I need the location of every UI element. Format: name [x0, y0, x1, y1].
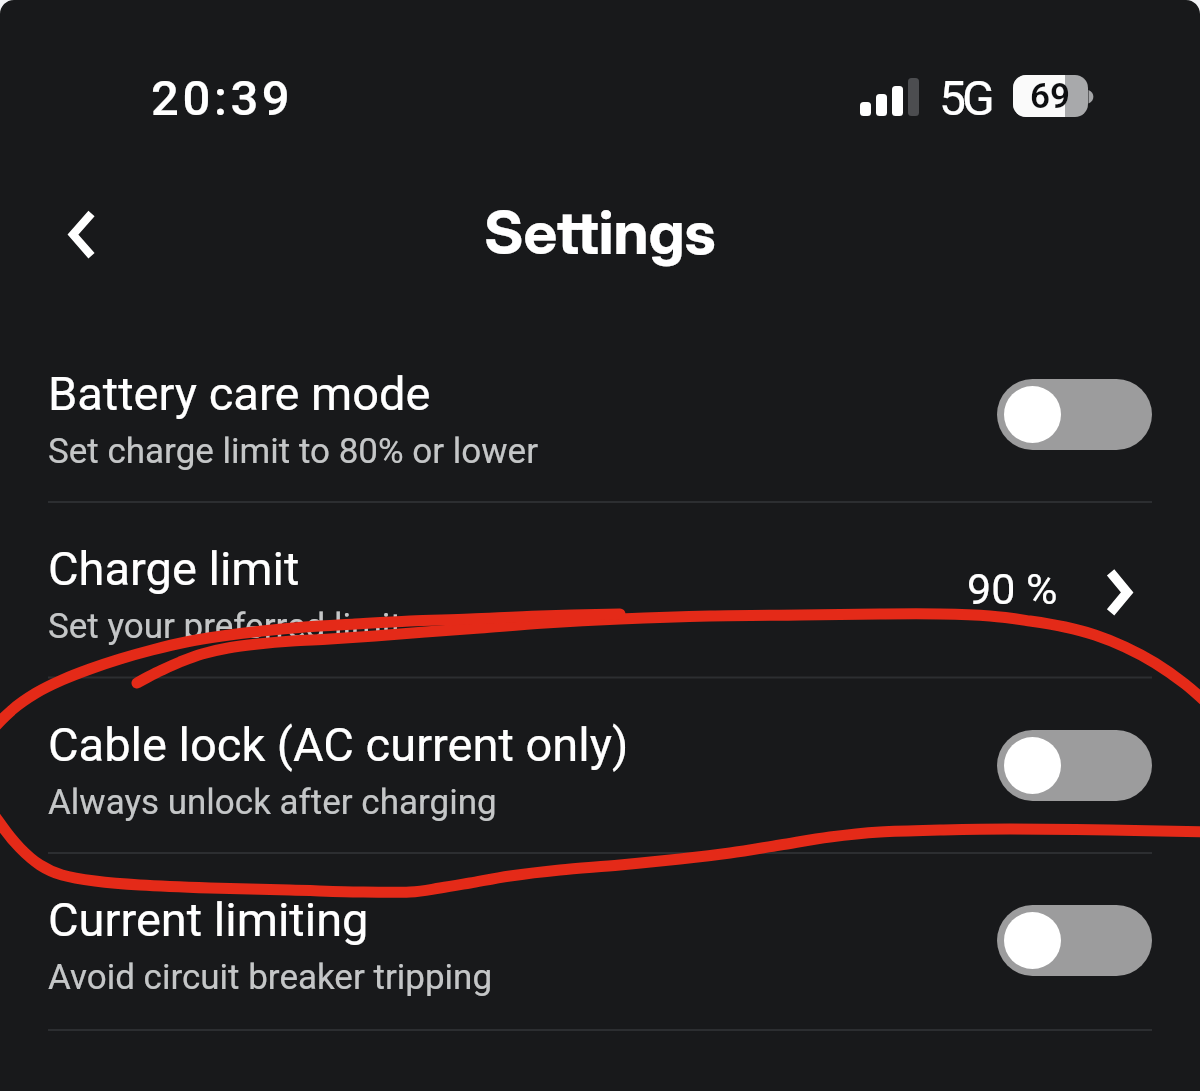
button[interactable]: Toggle off: [997, 730, 1152, 801]
button[interactable]: Toggle off: [997, 379, 1152, 450]
staticText: Cable lock (AC current only): [48, 717, 629, 772]
button[interactable]: Battery care mode: [0, 327, 1200, 503]
staticText: 69: [1030, 76, 1070, 117]
button[interactable]: Current limiting: [0, 853, 1200, 1029]
staticText: 5G: [939, 70, 991, 126]
staticText: Always unlock after charging: [48, 782, 497, 823]
staticText: 20:39: [151, 70, 294, 127]
staticText: Set your preferred limit: [48, 606, 402, 647]
staticText: Avoid circuit breaker tripping: [48, 957, 493, 998]
button[interactable]: Back: [52, 199, 112, 271]
staticText: Battery care mode: [48, 366, 431, 421]
staticText: Set charge limit to 80% or lower: [48, 431, 538, 472]
button[interactable]: Charge limit: [0, 502, 1200, 678]
button[interactable]: Cable lock (AC current only): [0, 678, 1200, 854]
button[interactable]: Toggle off: [997, 905, 1152, 976]
staticText: 90 %: [967, 564, 1058, 614]
staticText: Current limiting: [48, 892, 369, 947]
staticText: Charge limit: [48, 541, 300, 596]
button[interactable]: Open charge limit: [1096, 560, 1148, 612]
staticText: Settings: [0, 196, 1200, 269]
